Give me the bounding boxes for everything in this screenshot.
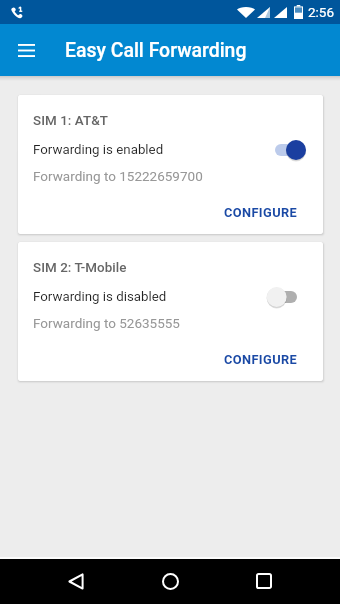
button[interactable]: SIM 2: T-Mobile	[18, 242, 323, 381]
staticText: Easy Call Forwarding	[65, 39, 247, 62]
staticText: 2:56	[308, 4, 335, 20]
button[interactable]: SIM 1: AT&T	[18, 95, 323, 234]
button[interactable]: Recent apps	[243, 560, 285, 602]
button[interactable]: Enable call forwarding	[267, 287, 306, 307]
button[interactable]: Open navigation menu	[10, 34, 42, 66]
staticText: Forwarding is disabled	[33, 289, 267, 305]
staticText: CONFIGURE	[224, 352, 298, 367]
staticText: CONFIGURE	[224, 205, 298, 220]
staticText: Forwarding is enabled	[33, 142, 267, 158]
staticText: Forwarding to 52635555	[33, 315, 180, 331]
button[interactable]: Home	[149, 560, 191, 602]
button[interactable]: CONFIGURE	[215, 348, 307, 371]
button[interactable]: Disable call forwarding	[267, 140, 306, 160]
staticText: SIM 2: T-Mobile	[33, 260, 127, 276]
button[interactable]: Back	[55, 560, 97, 602]
button[interactable]: CONFIGURE	[215, 201, 307, 224]
staticText: SIM 1: AT&T	[33, 113, 108, 129]
staticText: Forwarding to 15222659700	[33, 168, 203, 184]
